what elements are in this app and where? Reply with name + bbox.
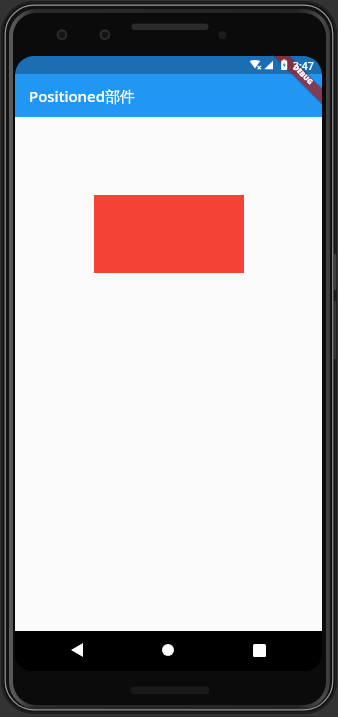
staticText: DEBUG	[291, 63, 315, 87]
staticText: 3:47	[293, 59, 314, 73]
staticText: Positioned部件	[29, 86, 135, 106]
button[interactable]: Home	[153, 635, 183, 665]
button[interactable]: Back	[62, 635, 92, 665]
button[interactable]: Recent apps	[244, 635, 274, 665]
